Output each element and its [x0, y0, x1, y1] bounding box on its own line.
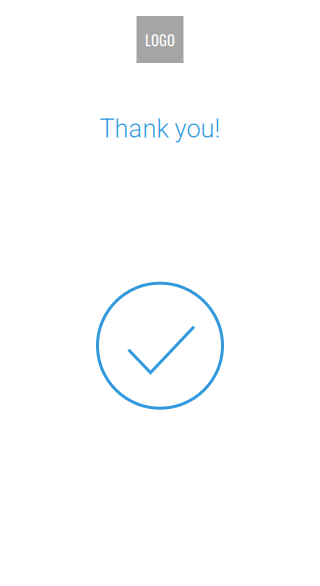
- staticText: LOGO: [145, 29, 175, 50]
- staticText: Thank you!: [99, 114, 220, 144]
